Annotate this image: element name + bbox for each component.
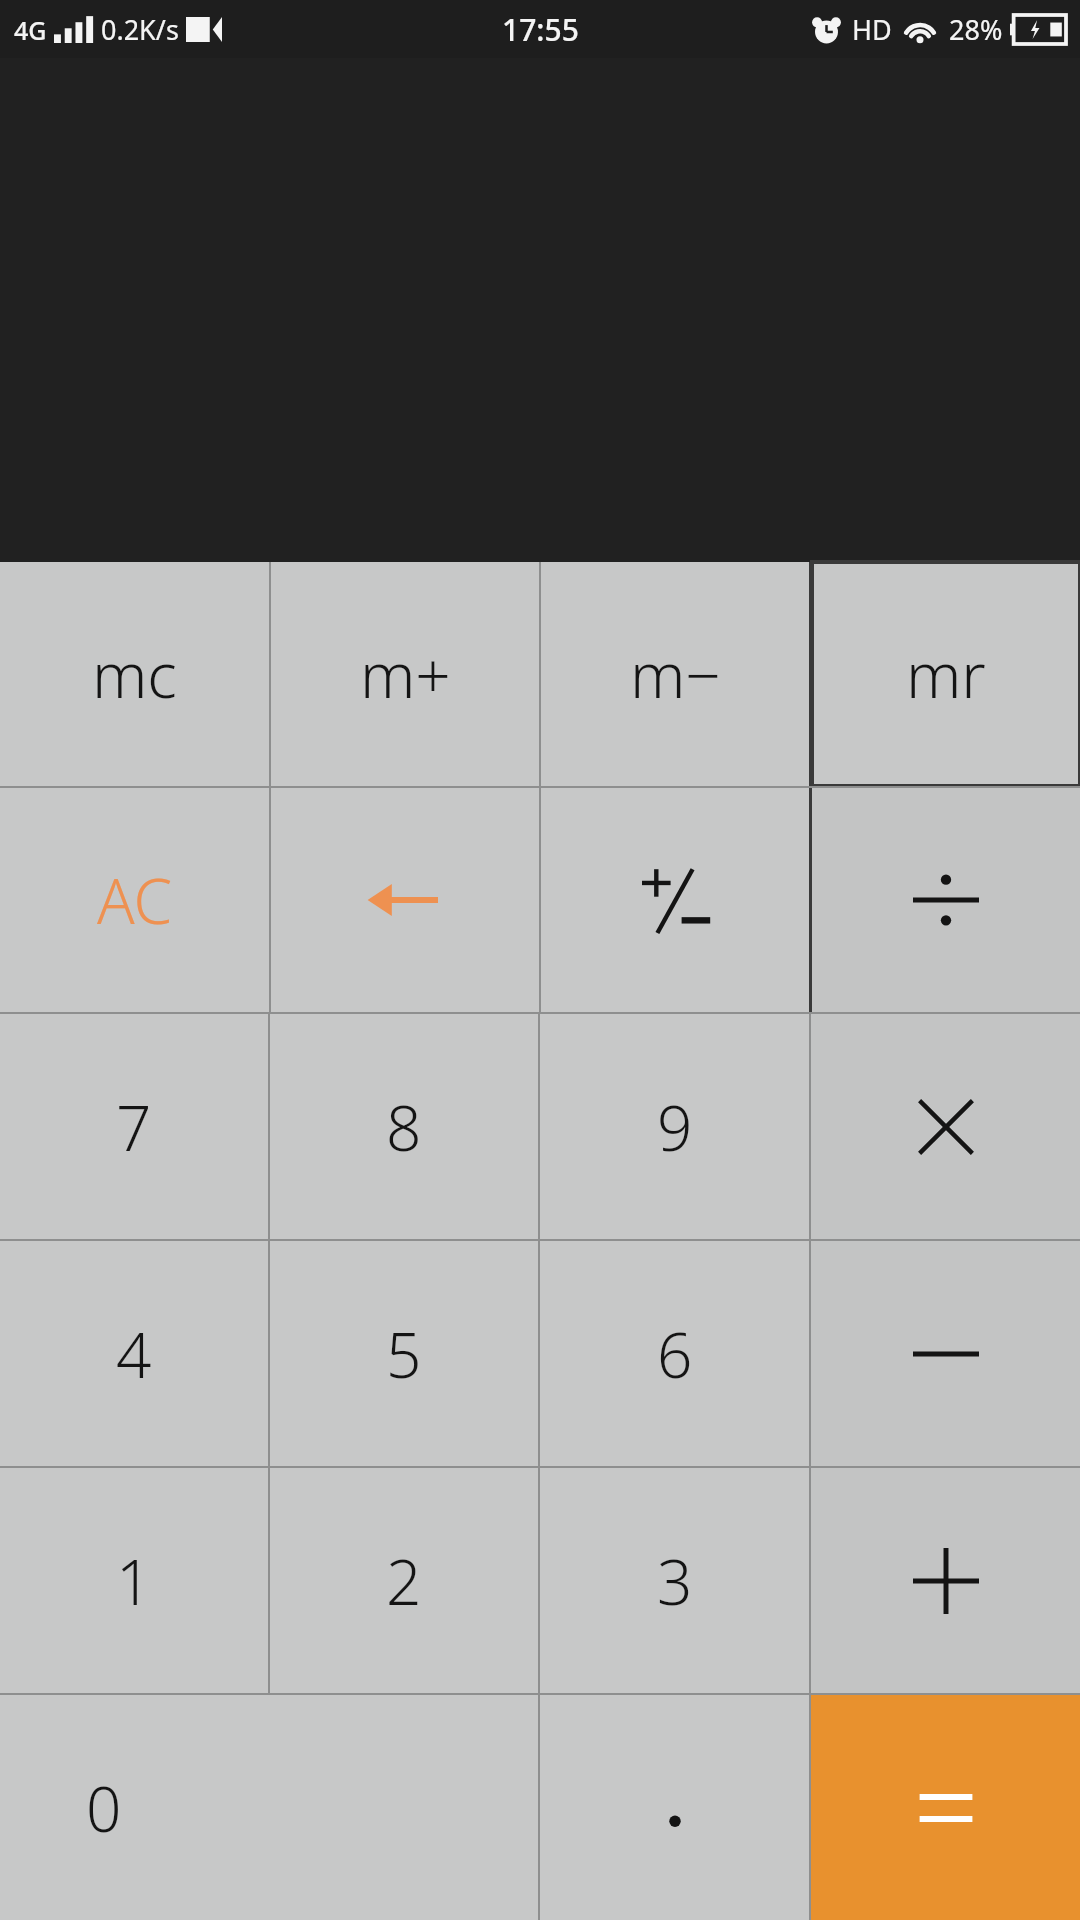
staticText: HD [852,11,892,48]
staticText: 6 [657,1312,693,1396]
staticText: 4G [14,13,47,47]
button[interactable]: AC [0,788,269,1012]
button[interactable]: 3 [540,1468,809,1693]
staticText: 4 [116,1312,152,1396]
staticText: 1 [116,1539,152,1623]
button[interactable]: Multiply [811,1014,1080,1239]
staticText: m+ [360,632,451,716]
button[interactable]: 4 [0,1241,268,1466]
button[interactable]: 1 [0,1468,268,1693]
staticText: 28% [949,11,1003,48]
staticText: mc [92,632,177,716]
button[interactable]: Divide [812,788,1080,1012]
button[interactable]: mc [0,562,269,786]
button[interactable]: 7 [0,1014,268,1239]
button[interactable]: Decimal point [540,1695,809,1920]
button[interactable]: 0 [0,1695,538,1920]
staticText: 8 [386,1085,422,1169]
button[interactable]: Minus [811,1241,1080,1466]
staticText: 0.2K/s [101,11,179,48]
button[interactable]: 6 [540,1241,809,1466]
staticText: 0 [86,1766,122,1850]
staticText: AC [97,858,173,942]
staticText: 7 [116,1085,152,1169]
staticText: 2 [386,1539,422,1623]
staticText: 9 [657,1085,693,1169]
button[interactable]: 2 [270,1468,538,1693]
button[interactable]: 5 [270,1241,538,1466]
staticText: m− [630,632,721,716]
button[interactable]: 9 [540,1014,809,1239]
button[interactable]: m+ [271,562,539,786]
staticText: 3 [657,1539,693,1623]
staticText: mr [906,632,986,716]
button[interactable]: m− [541,562,809,786]
staticText: 17:55 [502,9,579,50]
button[interactable]: Equals [811,1695,1080,1920]
button[interactable]: mr [812,562,1080,786]
button[interactable]: 8 [270,1014,538,1239]
button[interactable]: Plus [811,1468,1080,1693]
staticText: 5 [386,1312,422,1396]
button[interactable]: Backspace [271,788,539,1012]
button[interactable]: Plus minus [541,788,809,1012]
